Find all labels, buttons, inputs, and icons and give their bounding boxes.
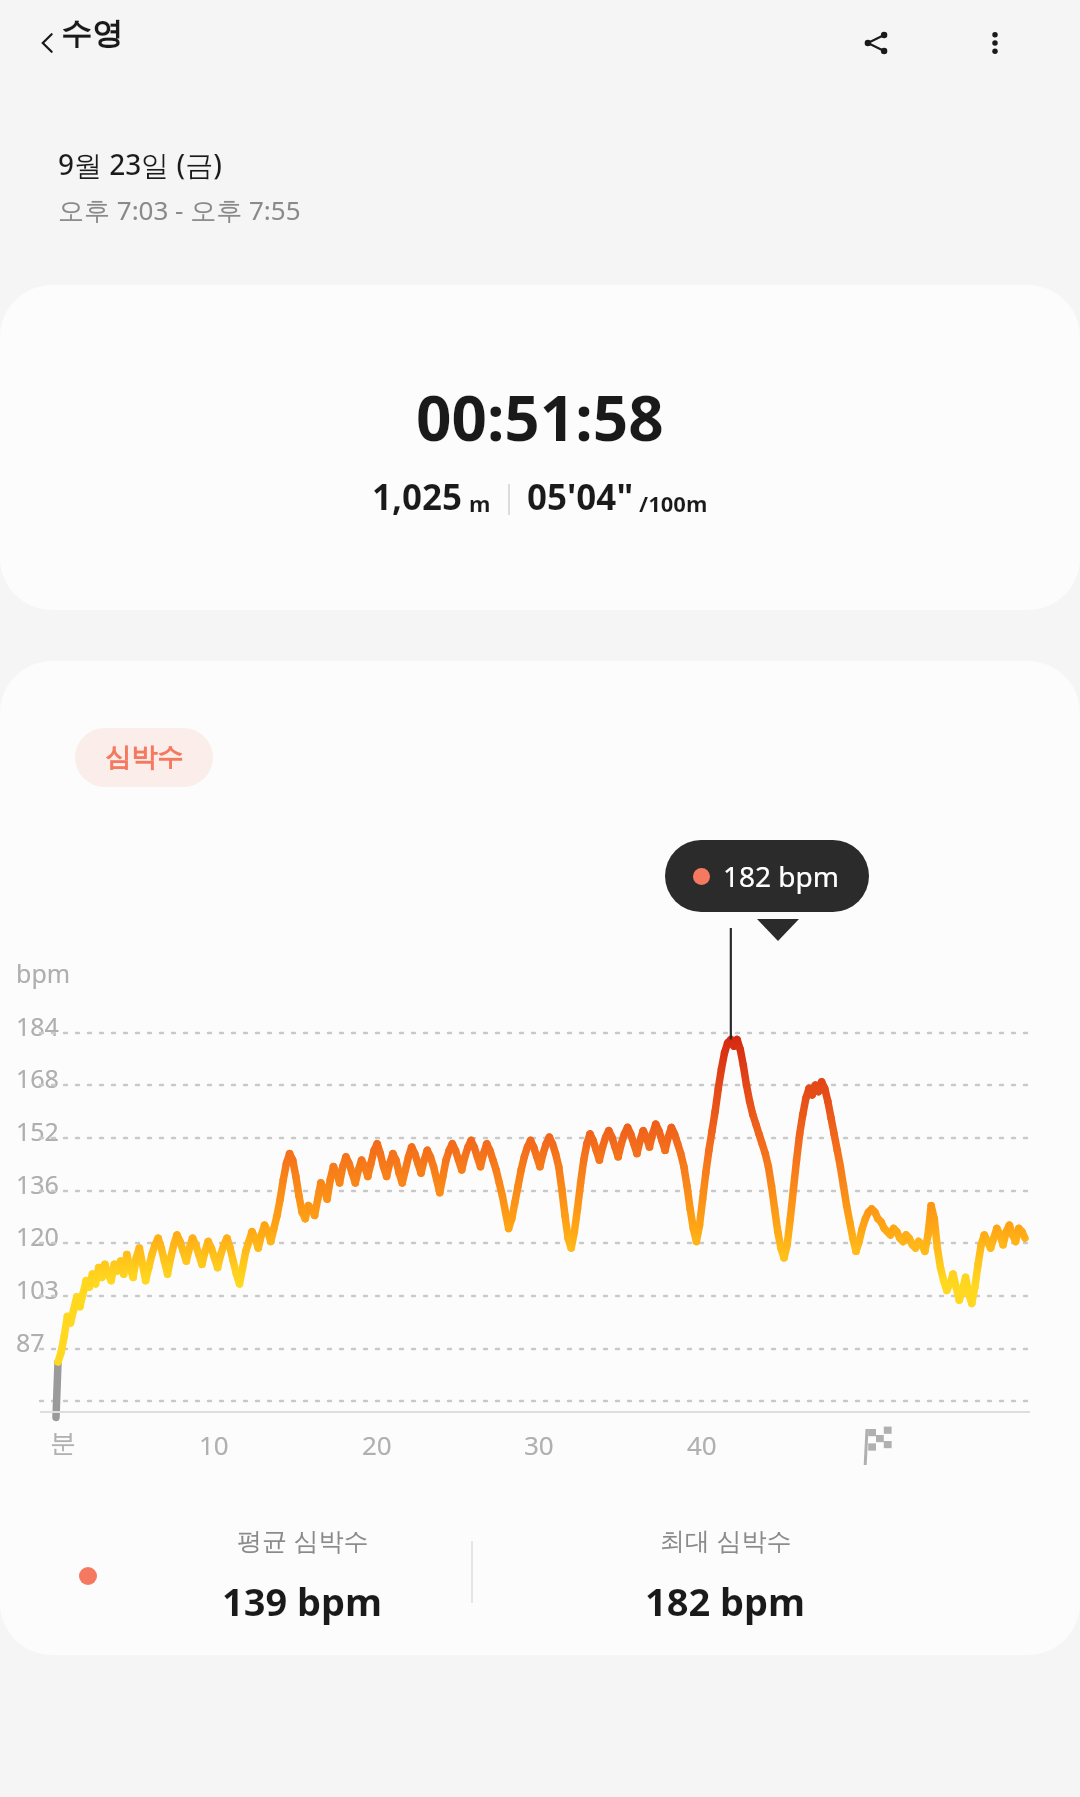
staticText: 152 [16, 1114, 59, 1148]
staticText: 168 [16, 1061, 59, 1095]
staticText: 10 [199, 1427, 229, 1462]
staticText: /100m [639, 488, 708, 518]
staticText: 40 [687, 1427, 717, 1462]
button[interactable]: Share [852, 19, 900, 67]
staticText: 87 [16, 1325, 45, 1359]
staticText: 1,025 [372, 473, 463, 521]
button[interactable]: 심박수 [75, 728, 213, 787]
staticText: 9월 23일 (금) [58, 145, 223, 183]
staticText: 심박수 [105, 741, 183, 774]
staticText: 30 [524, 1427, 554, 1462]
staticText: 103 [16, 1272, 59, 1306]
staticText: 20 [362, 1427, 392, 1462]
staticText: 05'04" [527, 473, 634, 521]
staticText: 최대 심박수 [660, 1523, 792, 1557]
staticText: 분 [50, 1427, 76, 1460]
staticText: 136 [16, 1167, 59, 1201]
staticText: 평균 심박수 [237, 1523, 369, 1557]
staticText: bpm [16, 956, 71, 990]
button[interactable]: 00:51:58 [0, 285, 1080, 610]
staticText: 139 bpm [222, 1575, 383, 1627]
button[interactable]: More options [971, 19, 1019, 67]
staticText: 수영 [61, 14, 123, 53]
staticText: 184 [16, 1009, 59, 1043]
staticText: 오후 7:03 - 오후 7:55 [58, 192, 301, 228]
staticText: m [469, 488, 491, 518]
staticText: 00:51:58 [416, 375, 664, 459]
staticText: 120 [16, 1219, 59, 1253]
staticText: 182 bpm [645, 1575, 806, 1627]
button[interactable]: Back [24, 19, 72, 67]
staticText: 182 bpm [723, 857, 839, 895]
